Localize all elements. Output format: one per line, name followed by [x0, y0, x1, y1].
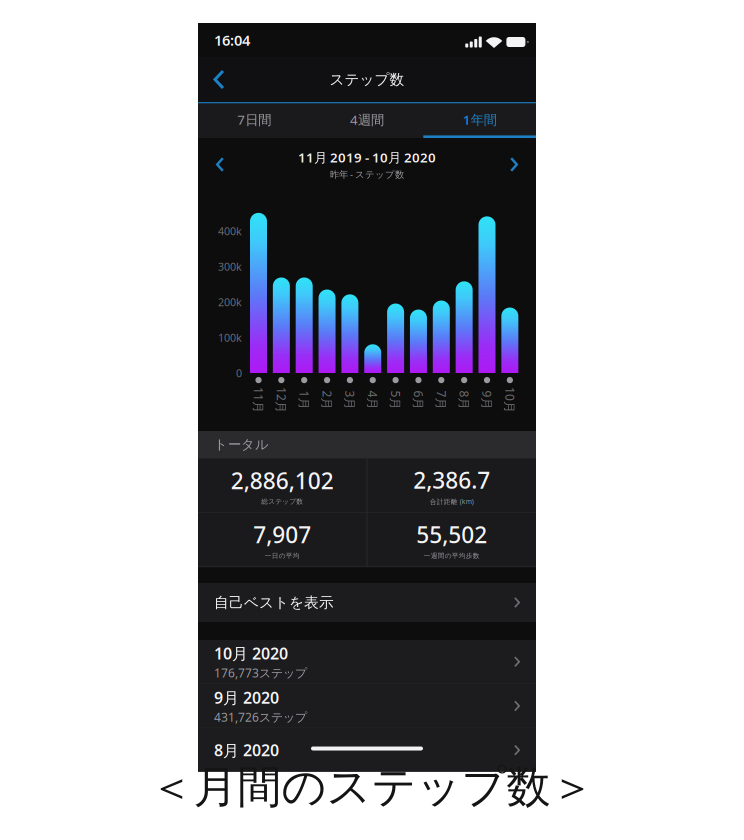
- staticText: 自己ベストを表示: [214, 593, 334, 611]
- staticText: 100k: [218, 330, 242, 345]
- button[interactable]: 9月 2020: [198, 684, 536, 728]
- staticText: ＜月間のステップ数＞: [149, 760, 594, 814]
- staticText: 2,886,102: [231, 465, 334, 495]
- button[interactable]: 7日間: [198, 104, 311, 138]
- staticText: 200k: [218, 295, 242, 309]
- staticText: 0: [236, 366, 242, 380]
- staticText: 12月: [268, 392, 294, 408]
- staticText: 1年間: [463, 111, 497, 128]
- staticText: 7日間: [237, 111, 271, 128]
- staticText: 2,386.7: [413, 465, 490, 495]
- staticText: 1月: [295, 392, 314, 408]
- button[interactable]: 1年間: [423, 104, 536, 138]
- staticText: 11月: [245, 392, 271, 408]
- staticText: 総ステップ数: [261, 497, 303, 506]
- staticText: 55,502: [416, 519, 487, 550]
- button[interactable]: 自己ベストを表示: [198, 583, 536, 622]
- staticText: 10月: [497, 392, 523, 408]
- staticText: 8月: [455, 392, 474, 408]
- staticText: 5月: [386, 392, 405, 408]
- button[interactable]: 次の期間: [499, 142, 529, 187]
- staticText: 9月 2020: [214, 687, 279, 708]
- staticText: 昨年 - ステップ数: [330, 168, 404, 181]
- staticText: 9月: [477, 392, 496, 408]
- staticText: 16:04: [214, 30, 250, 50]
- staticText: 合計距離 (km): [430, 497, 474, 506]
- button[interactable]: 前の期間: [205, 142, 235, 187]
- staticText: 2月: [318, 392, 337, 408]
- staticText: 10月 2020: [214, 643, 288, 664]
- staticText: 8月 2020: [214, 739, 279, 761]
- staticText: 一日の平均: [265, 552, 300, 560]
- staticText: 431,726ステップ: [214, 709, 307, 725]
- button[interactable]: 4週間: [311, 104, 423, 138]
- staticText: トータル: [214, 436, 269, 453]
- staticText: 11月 2019 - 10月 2020: [298, 148, 436, 166]
- staticText: 4月: [363, 392, 382, 408]
- button[interactable]: 10月 2020: [198, 640, 536, 683]
- staticText: 400k: [218, 224, 242, 238]
- staticText: 7月: [432, 392, 451, 408]
- staticText: 6月: [409, 392, 428, 408]
- staticText: ステップ数: [329, 70, 404, 88]
- staticText: 7,907: [253, 519, 311, 550]
- staticText: 300k: [218, 259, 242, 274]
- button[interactable]: 8月 2020: [198, 728, 536, 772]
- staticText: 3月: [340, 392, 359, 408]
- button[interactable]: 戻る: [202, 57, 236, 102]
- staticText: 176,773ステップ: [214, 665, 307, 681]
- staticText: 4週間: [350, 111, 384, 128]
- staticText: 一週間の平均歩数: [424, 552, 480, 560]
